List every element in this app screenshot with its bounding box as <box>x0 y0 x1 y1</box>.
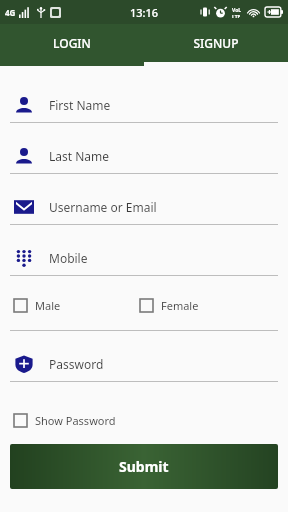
staticText: VoL <box>232 7 242 14</box>
button[interactable]: Password <box>0 347 288 398</box>
button[interactable]: Last Name <box>0 139 288 190</box>
button[interactable]: Male <box>14 292 140 318</box>
staticText: 13:16 <box>130 5 159 20</box>
button[interactable]: SIGNUP <box>144 24 288 62</box>
staticText: First Name <box>49 97 111 113</box>
staticText: 4G <box>5 7 16 18</box>
button[interactable]: Mobile <box>0 241 288 292</box>
button[interactable]: First Name <box>0 88 288 139</box>
staticText: Username or Email <box>49 199 157 215</box>
staticText: LTE <box>232 14 241 18</box>
button[interactable]: Username or Email <box>0 190 288 241</box>
button[interactable]: Submit <box>10 444 278 489</box>
staticText: SIGNUP <box>193 35 239 51</box>
staticText: Last Name <box>49 148 110 164</box>
staticText: Password <box>49 356 104 372</box>
staticText: Female <box>161 298 199 313</box>
staticText: Mobile <box>49 250 88 266</box>
staticText: Submit <box>119 457 169 476</box>
button[interactable]: Female <box>140 292 288 318</box>
staticText: Male <box>35 298 61 313</box>
button[interactable]: Show Password <box>14 408 288 432</box>
staticText: LOGIN <box>53 35 91 51</box>
button[interactable]: LOGIN <box>0 24 144 62</box>
staticText: Show Password <box>35 413 116 428</box>
